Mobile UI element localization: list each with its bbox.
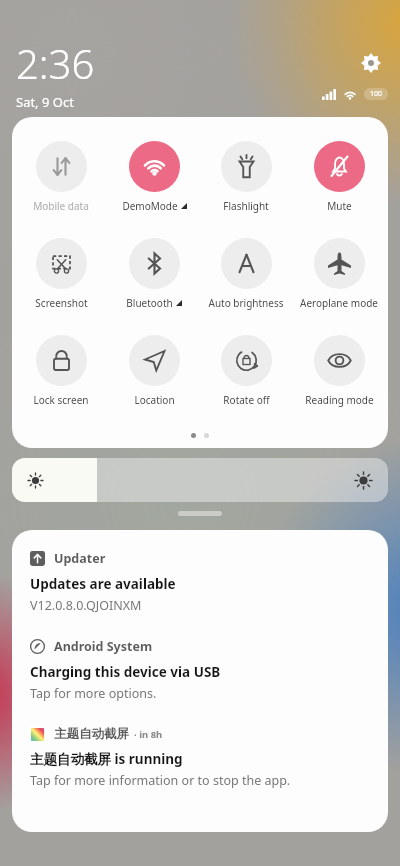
staticText: V12.0.8.0.QJOINXM bbox=[30, 597, 142, 614]
button[interactable]: Flashlight bbox=[203, 139, 289, 215]
staticText: Mute bbox=[327, 199, 352, 213]
staticText: Android System bbox=[54, 638, 153, 655]
button[interactable]: Reading mode bbox=[296, 333, 382, 409]
staticText: Aeroplane mode bbox=[300, 296, 378, 310]
button[interactable]: Location bbox=[111, 333, 197, 409]
button[interactable]: Updater bbox=[12, 530, 388, 618]
staticText: Screenshot bbox=[35, 296, 88, 310]
staticText: Reading mode bbox=[305, 393, 374, 407]
button[interactable]: Mobile data bbox=[18, 139, 104, 215]
button[interactable]: Settings bbox=[354, 46, 388, 80]
staticText: Auto brightness bbox=[208, 296, 284, 310]
staticText: Lock screen bbox=[33, 393, 89, 407]
staticText: · in 8h bbox=[134, 728, 163, 741]
staticText: 主题自动截屏 bbox=[54, 726, 129, 742]
staticText: Updater bbox=[54, 550, 106, 567]
staticText: Bluetooth bbox=[126, 296, 173, 310]
button[interactable]: Bluetooth bbox=[111, 236, 197, 312]
staticText: Charging this device via USB bbox=[30, 663, 221, 681]
button[interactable]: Screenshot bbox=[18, 236, 104, 312]
staticText: Tap for more information or to stop the … bbox=[30, 772, 291, 789]
staticText: Rotate off bbox=[223, 393, 270, 407]
staticText: Tap for more options. bbox=[30, 685, 157, 702]
staticText: Mobile data bbox=[33, 199, 89, 213]
button[interactable]: Lock screen bbox=[18, 333, 104, 409]
staticText: Flashlight bbox=[223, 199, 269, 213]
staticText: DemoMode bbox=[122, 199, 178, 213]
staticText: Location bbox=[134, 393, 175, 407]
button[interactable]: Brightness bbox=[12, 458, 388, 502]
button[interactable]: Mute bbox=[296, 139, 382, 215]
staticText: 100 bbox=[370, 89, 383, 99]
button[interactable]: DemoMode bbox=[111, 139, 197, 215]
button[interactable]: Android System bbox=[12, 618, 388, 706]
staticText: 2:36 bbox=[16, 36, 95, 90]
staticText: Sat, 9 Oct bbox=[16, 93, 74, 111]
staticText: Updates are available bbox=[30, 575, 176, 593]
button[interactable]: 主题自动截屏 bbox=[12, 706, 388, 793]
staticText: 主题自动截屏 is running bbox=[30, 750, 183, 768]
button[interactable]: Rotate off bbox=[203, 333, 289, 409]
button[interactable]: Aeroplane mode bbox=[296, 236, 382, 312]
button[interactable]: Auto brightness bbox=[203, 236, 289, 312]
